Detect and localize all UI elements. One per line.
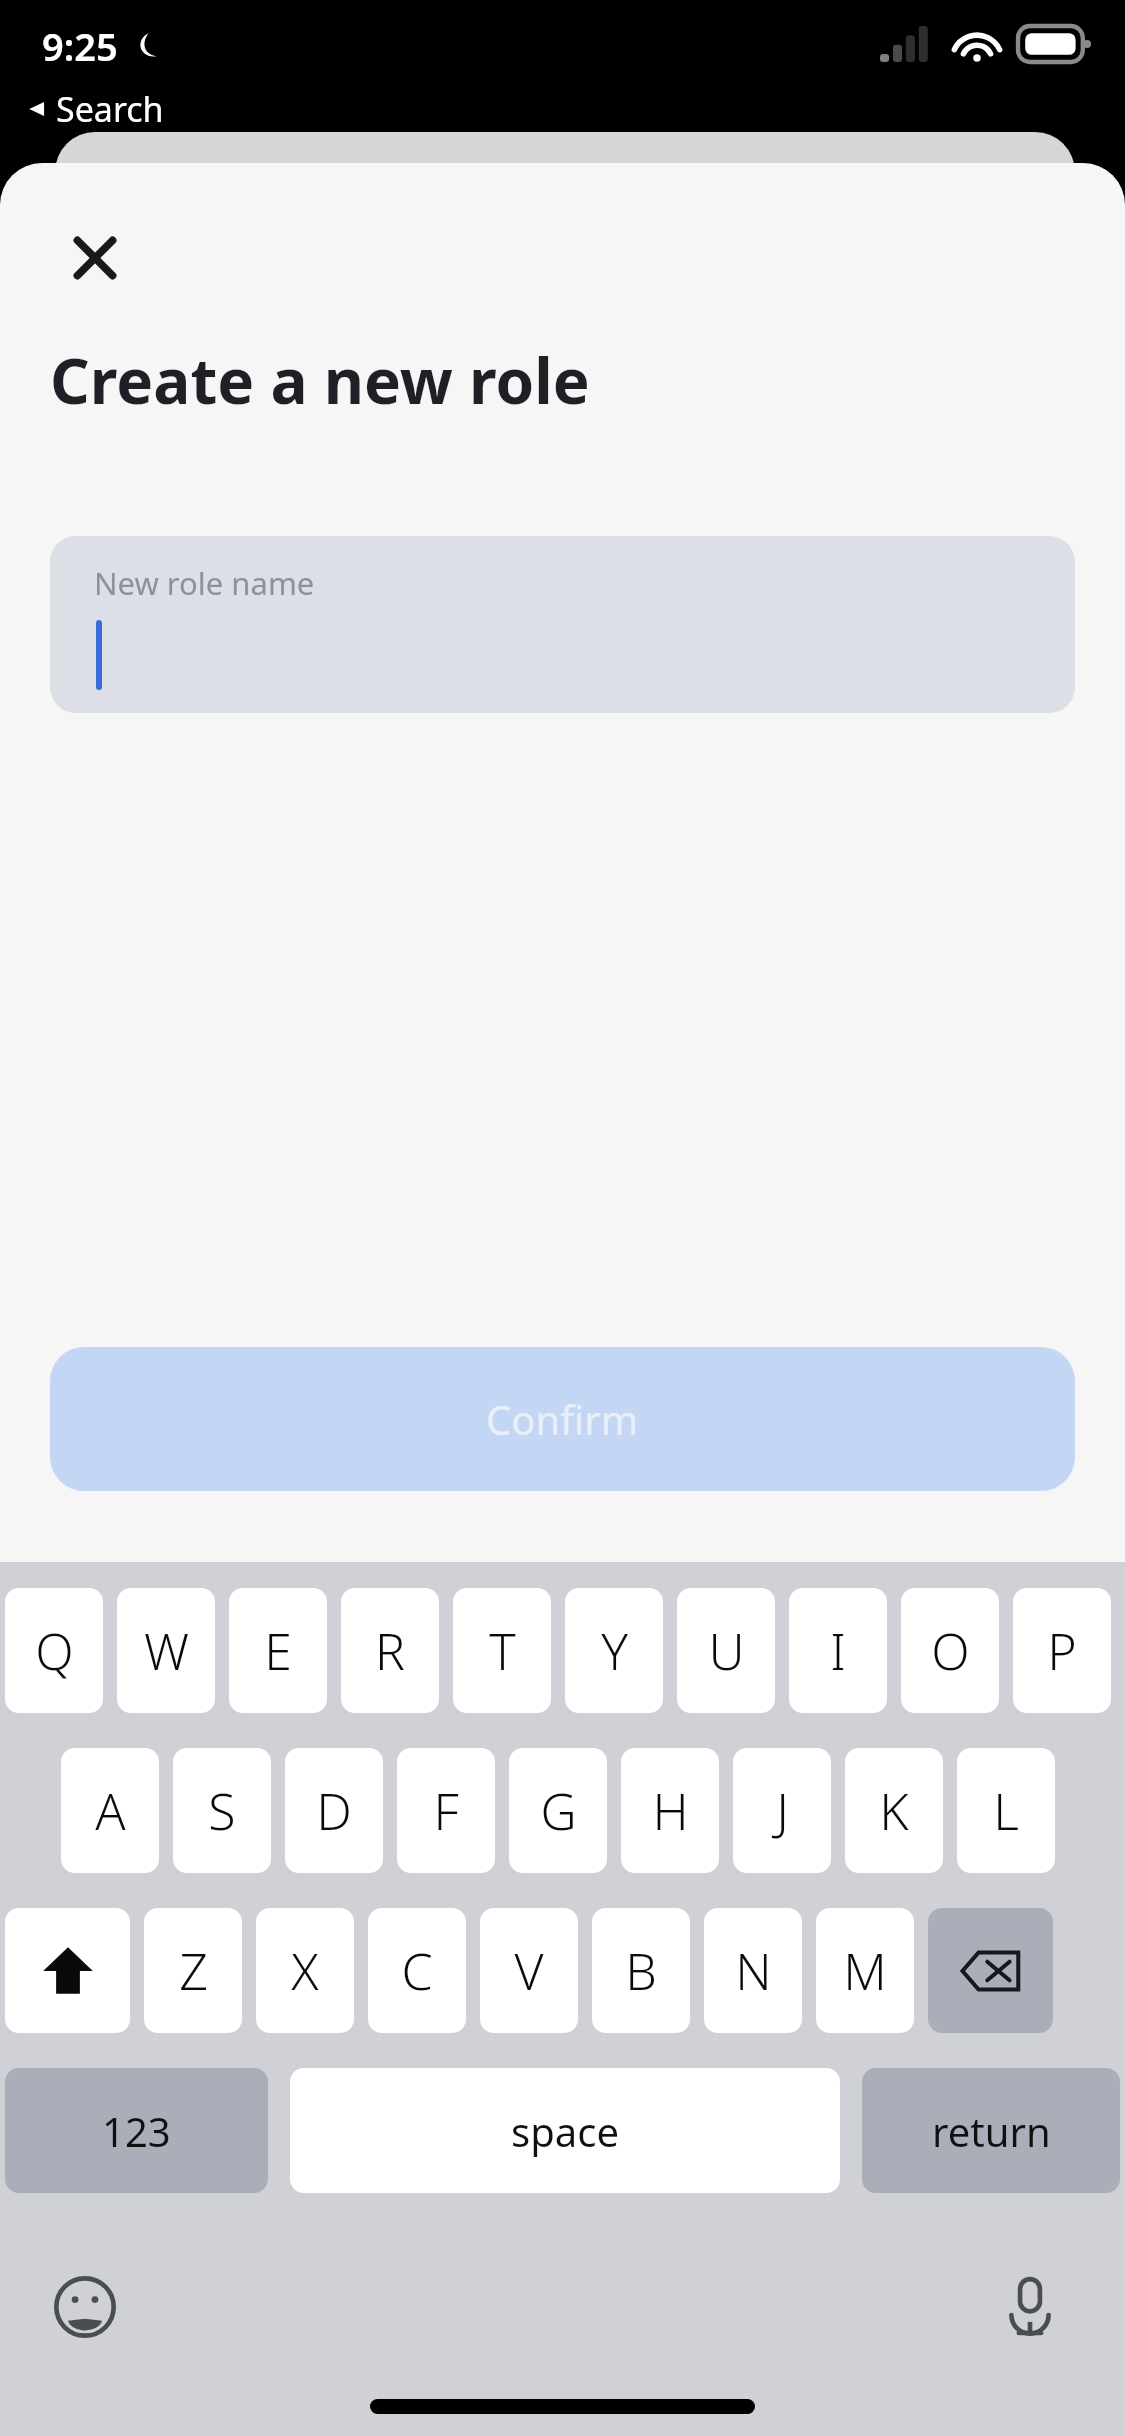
- button[interactable]: space: [290, 2068, 840, 2193]
- button[interactable]: R: [341, 1588, 439, 1713]
- staticText: New role name: [94, 562, 315, 604]
- button[interactable]: Q: [5, 1588, 103, 1713]
- button[interactable]: Dictation: [985, 2262, 1075, 2352]
- button[interactable]: F: [397, 1748, 495, 1873]
- staticText: K: [879, 1777, 909, 1845]
- staticText: C: [401, 1937, 433, 2005]
- button[interactable]: C: [368, 1908, 466, 2033]
- button[interactable]: T: [453, 1588, 551, 1713]
- staticText: Create a new role: [50, 338, 590, 422]
- staticText: O: [931, 1617, 970, 1685]
- button[interactable]: M: [816, 1908, 914, 2033]
- staticText: E: [264, 1617, 292, 1685]
- button[interactable]: G: [509, 1748, 607, 1873]
- staticText: X: [291, 1937, 319, 2005]
- staticText: L: [993, 1777, 1019, 1845]
- button[interactable]: P: [1013, 1588, 1111, 1713]
- button[interactable]: O: [901, 1588, 999, 1713]
- staticText: S: [208, 1777, 236, 1845]
- staticText: W: [144, 1617, 189, 1685]
- staticText: H: [652, 1777, 689, 1845]
- button[interactable]: U: [677, 1588, 775, 1713]
- button[interactable]: Search: [20, 84, 170, 134]
- staticText: return: [932, 2104, 1051, 2158]
- staticText: Y: [601, 1617, 628, 1685]
- staticText: Confirm: [486, 1392, 639, 1446]
- staticText: B: [625, 1937, 657, 2005]
- staticText: G: [540, 1777, 577, 1845]
- staticText: A: [95, 1777, 126, 1845]
- staticText: P: [1047, 1617, 1077, 1685]
- button[interactable]: Z: [144, 1908, 242, 2033]
- button[interactable]: S: [173, 1748, 271, 1873]
- staticText: R: [375, 1617, 405, 1685]
- staticText: Q: [35, 1617, 74, 1685]
- button[interactable]: D: [285, 1748, 383, 1873]
- staticText: T: [489, 1617, 516, 1685]
- staticText: J: [776, 1777, 789, 1845]
- button[interactable]: New role name: [50, 536, 1075, 713]
- button[interactable]: J: [733, 1748, 831, 1873]
- button[interactable]: A: [61, 1748, 159, 1873]
- button[interactable]: N: [704, 1908, 802, 2033]
- staticText: F: [433, 1777, 459, 1845]
- staticText: D: [316, 1777, 352, 1845]
- staticText: Search: [56, 86, 164, 132]
- button[interactable]: return: [862, 2068, 1120, 2193]
- button[interactable]: K: [845, 1748, 943, 1873]
- staticText: U: [708, 1617, 745, 1685]
- button[interactable]: H: [621, 1748, 719, 1873]
- button[interactable]: 123: [5, 2068, 268, 2193]
- button[interactable]: L: [957, 1748, 1055, 1873]
- button[interactable]: Close: [52, 215, 138, 301]
- button[interactable]: W: [117, 1588, 215, 1713]
- button[interactable]: E: [229, 1588, 327, 1713]
- button[interactable]: V: [480, 1908, 578, 2033]
- button[interactable]: Backspace: [928, 1908, 1053, 2033]
- button[interactable]: B: [592, 1908, 690, 2033]
- staticText: 123: [102, 2104, 171, 2158]
- button[interactable]: Emoji keyboard: [40, 2262, 130, 2352]
- staticText: M: [843, 1937, 887, 2005]
- staticText: space: [511, 2104, 619, 2158]
- staticText: Z: [179, 1937, 208, 2005]
- staticText: N: [735, 1937, 772, 2005]
- staticText: 9:25: [42, 20, 118, 72]
- staticText: V: [514, 1937, 544, 2005]
- button[interactable]: Y: [565, 1588, 663, 1713]
- button[interactable]: I: [789, 1588, 887, 1713]
- button[interactable]: X: [256, 1908, 354, 2033]
- button[interactable]: Confirm: [50, 1347, 1075, 1491]
- staticText: I: [830, 1617, 846, 1685]
- button[interactable]: Shift: [5, 1908, 130, 2033]
